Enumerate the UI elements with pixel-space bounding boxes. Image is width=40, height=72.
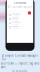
button[interactable]: Dana Ruiz	[7, 25, 33, 29]
staticText: Product	[14, 15, 20, 17]
button[interactable]: Add contact	[28, 11, 31, 14]
staticText: Dana Ruiz	[12, 26, 19, 27]
staticText: Chris Duval	[12, 21, 20, 23]
staticText: Alex Morgan	[12, 13, 21, 15]
staticText: A simple Contacts manager for	[2, 54, 38, 61]
staticText: Bella Chen	[12, 17, 19, 19]
staticText: your team — import, tag and sync	[0, 62, 39, 69]
button[interactable]: Chris Duval	[7, 21, 33, 25]
staticText: in seconds.	[12, 70, 28, 72]
staticText: All contacts synced	[7, 5, 32, 9]
button[interactable]: Alex Morgan	[7, 13, 33, 17]
staticText: Sales	[14, 23, 18, 25]
button[interactable]: Bella Chen	[7, 17, 33, 21]
staticText: Contacts	[14, 1, 26, 4]
staticText: Support	[13, 27, 19, 29]
